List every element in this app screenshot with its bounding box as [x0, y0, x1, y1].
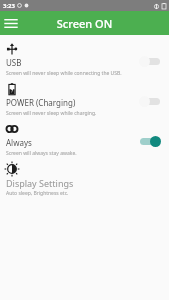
button[interactable]: Display Settings — [0, 161, 169, 201]
staticText: Screen will never sleep while connecting… — [6, 70, 122, 77]
staticText: POWER (Charging) — [6, 97, 76, 108]
staticText: Screen ON — [0, 16, 169, 31]
staticText: Display Settings — [6, 177, 74, 189]
button[interactable]: POWER (Charging) — [0, 81, 169, 121]
button[interactable]: Open navigation menu — [0, 12, 22, 34]
staticText: 3:23 — [3, 2, 15, 10]
staticText: Screen will never sleep while charging. — [6, 110, 97, 117]
staticText: Screen will always stay awake. — [6, 150, 77, 157]
staticText: Always — [6, 137, 32, 148]
staticText: USB — [6, 57, 22, 68]
staticText: Auto sleep, Brightness etc. — [6, 190, 69, 197]
button[interactable]: Always — [0, 121, 169, 161]
button[interactable]: USB — [0, 41, 169, 81]
